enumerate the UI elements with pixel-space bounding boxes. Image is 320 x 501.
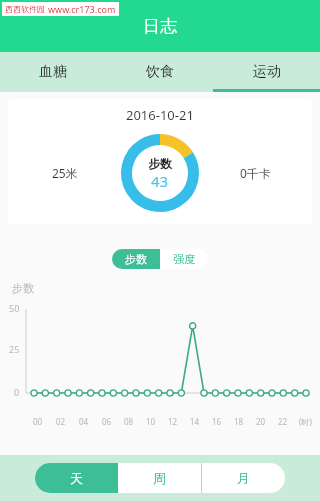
staticText: 25 — [9, 343, 20, 355]
staticText: 周 — [153, 470, 166, 486]
button[interactable]: 运动 — [213, 52, 320, 92]
button[interactable]: 月 — [202, 463, 285, 493]
staticText: 饮食 — [146, 63, 174, 81]
staticText: 04 — [79, 416, 89, 427]
staticText: (时) — [299, 416, 312, 427]
button[interactable]: 2016-10-21 — [8, 99, 312, 224]
button[interactable]: 天 — [35, 463, 118, 493]
staticText: 强度 — [173, 252, 195, 266]
staticText: 步数 — [12, 281, 34, 295]
staticText: 06 — [102, 416, 112, 427]
staticText: 00 — [33, 416, 43, 427]
staticText: 10 — [146, 416, 156, 427]
staticText: 50 — [9, 302, 20, 314]
staticText: 0 — [14, 386, 20, 398]
staticText: 14 — [190, 416, 200, 427]
staticText: 0千卡 — [240, 165, 271, 181]
staticText: 步数 — [148, 156, 172, 171]
staticText: 12 — [168, 416, 178, 427]
staticText: 血糖 — [39, 63, 67, 81]
staticText: 步数 — [125, 252, 147, 266]
staticText: 日志 — [143, 16, 177, 37]
staticText: 西西软件园 — [5, 4, 45, 14]
button[interactable]: 步数 — [112, 249, 160, 269]
button[interactable]: 血糖 — [0, 52, 106, 92]
staticText: 43 — [151, 171, 169, 191]
staticText: 25米 — [52, 165, 78, 181]
button[interactable]: 周 — [118, 463, 201, 493]
staticText: 16 — [212, 416, 222, 427]
staticText: www.cr173.com — [48, 3, 116, 15]
button[interactable]: 强度 — [160, 249, 208, 269]
staticText: 月 — [237, 470, 250, 486]
staticText: 08 — [124, 416, 134, 427]
staticText: 运动 — [253, 63, 281, 81]
staticText: 天 — [70, 470, 83, 486]
staticText: 20 — [256, 416, 266, 427]
staticText: 2016-10-21 — [126, 106, 194, 124]
staticText: 22 — [278, 416, 288, 427]
button[interactable]: 饮食 — [106, 52, 213, 92]
staticText: 18 — [234, 416, 244, 427]
staticText: 02 — [56, 416, 66, 427]
